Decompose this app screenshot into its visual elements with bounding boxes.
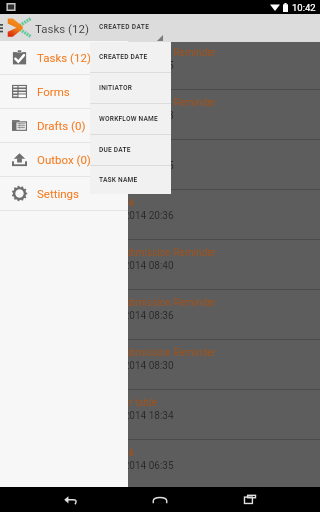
staticText: WORKFLOW NAME <box>99 115 158 123</box>
button[interactable]: New task <box>0 140 320 190</box>
button[interactable]: New task <box>0 190 320 240</box>
button[interactable]: New task <box>0 440 320 490</box>
staticText: Tasks (12) <box>35 22 89 35</box>
button[interactable]: Form Submission Reminder <box>0 290 320 340</box>
staticText: Drafts (0) <box>37 119 86 132</box>
button[interactable]: Form Submission Reminder <box>0 240 320 290</box>
button[interactable]: INITIATOR <box>90 73 171 103</box>
button[interactable]: Form Submission Reminder <box>0 90 320 140</box>
staticText: 06/11/2014 20:45 <box>93 160 174 172</box>
staticText: Forms <box>37 85 70 98</box>
button[interactable]: Back <box>50 487 90 512</box>
staticText: Form Submission Reminder <box>93 347 217 359</box>
button[interactable]: Forms <box>0 75 128 108</box>
staticText: 05/11/2014 08:30 <box>93 360 174 372</box>
staticText: New task <box>93 447 135 459</box>
staticText: INITIATOR <box>99 84 133 92</box>
button[interactable]: Recent apps <box>230 487 270 512</box>
staticText: Form Submission Reminder <box>93 97 217 109</box>
button[interactable]: Open navigation drawer <box>0 14 5 42</box>
button[interactable]: Home <box>140 487 180 512</box>
staticText: 06/11/2014 20:58 <box>93 110 174 122</box>
staticText: 05/11/2014 08:40 <box>93 260 174 272</box>
button[interactable]: Form Submission Reminder <box>0 40 320 90</box>
button[interactable]: Tasks (12) <box>0 41 128 74</box>
button[interactable]: Outbox (0) <box>0 143 128 176</box>
staticText: CREATED DATE <box>99 53 148 61</box>
staticText: Form Submission Reminder <box>93 47 217 59</box>
staticText: TASK NAME <box>99 176 138 184</box>
staticText: Settings <box>37 187 79 200</box>
staticText: Outbox (0) <box>37 153 91 166</box>
staticText: New task <box>93 197 135 209</box>
staticText: New task <box>93 147 135 159</box>
button[interactable]: Indicator table <box>0 390 320 440</box>
button[interactable]: Form Submission Reminder <box>0 340 320 390</box>
staticText: CREATED DATE <box>99 23 150 31</box>
staticText: 06/11/2014 21:05 <box>93 60 174 72</box>
staticText: Indicator table <box>93 397 157 409</box>
staticText: 05/11/2014 20:36 <box>93 210 174 222</box>
button[interactable]: Drafts (0) <box>0 109 128 142</box>
staticText: Form Submission Reminder <box>93 297 217 309</box>
staticText: 04/11/2014 18:34 <box>93 410 174 422</box>
button[interactable]: DUE DATE <box>90 135 171 165</box>
staticText: 10:42 <box>292 2 316 13</box>
staticText: 04/11/2014 06:35 <box>93 460 174 472</box>
button[interactable]: WORKFLOW NAME <box>90 104 171 134</box>
button[interactable]: CREATED DATE <box>93 14 163 42</box>
staticText: Tasks (12) <box>37 51 91 64</box>
staticText: DUE DATE <box>99 146 131 154</box>
button[interactable]: Settings <box>0 177 128 210</box>
button[interactable]: CREATED DATE <box>90 42 171 72</box>
staticText: 05/11/2014 08:36 <box>93 310 174 322</box>
staticText: Form Submission Reminder <box>93 247 217 259</box>
button[interactable]: TASK NAME <box>90 166 171 194</box>
